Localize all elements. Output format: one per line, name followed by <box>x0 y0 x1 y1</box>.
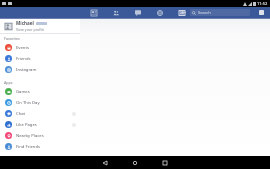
button[interactable]: Friend Requests <box>110 7 121 18</box>
button[interactable]: Messages <box>132 7 143 18</box>
staticText: Nearby Places <box>16 133 44 139</box>
staticText: Events <box>16 45 29 51</box>
button[interactable]: Recents <box>157 156 173 169</box>
button[interactable]: Like Pages <box>0 119 80 130</box>
button[interactable]: Instagram <box>0 64 80 75</box>
button[interactable]: Nearby Places <box>0 130 80 141</box>
staticText: Search <box>198 10 211 15</box>
button[interactable]: Friends <box>0 53 80 64</box>
staticText: Like Pages <box>16 122 37 128</box>
staticText: Find Friends <box>16 144 41 150</box>
staticText: 11:52 <box>257 1 268 6</box>
button[interactable]: On This Day <box>0 97 80 108</box>
button[interactable]: Back <box>179 8 188 17</box>
staticText: Games <box>16 89 30 95</box>
staticText: Instagram <box>16 67 37 73</box>
staticText: Friends <box>16 56 31 62</box>
button[interactable]: Games <box>0 86 80 97</box>
button[interactable]: Menu <box>176 7 187 18</box>
staticText: Michael <box>16 20 34 26</box>
staticText: Apps <box>4 80 13 85</box>
staticText: On This Day <box>16 100 40 106</box>
button[interactable]: Home <box>127 156 143 169</box>
button[interactable]: Find Friends <box>0 141 80 152</box>
button[interactable]: Search <box>190 9 250 16</box>
button[interactable]: News Feed <box>88 7 99 18</box>
button[interactable]: Notifications <box>154 7 165 18</box>
button[interactable]: Chat <box>0 108 80 119</box>
staticText: Favorites <box>4 36 20 41</box>
button[interactable]: Back <box>97 156 113 169</box>
staticText: Chat <box>16 111 26 117</box>
staticText: View your profile <box>16 27 45 32</box>
button[interactable]: Michael <box>0 19 80 33</box>
button[interactable]: Account <box>257 8 266 17</box>
button[interactable]: Events <box>0 42 80 53</box>
